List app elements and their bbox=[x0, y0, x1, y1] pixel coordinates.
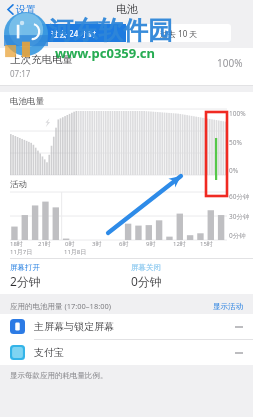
button[interactable]: 支付宝 bbox=[0, 340, 253, 365]
staticText: 50% bbox=[229, 138, 242, 147]
staticText: 过去 10 天 bbox=[160, 28, 198, 39]
button[interactable]: 过去 24 小时 bbox=[22, 24, 126, 42]
staticText: 2分钟 bbox=[10, 273, 41, 289]
staticText: 上次充电电量 bbox=[10, 53, 73, 66]
staticText: www.pc0359.cn bbox=[55, 44, 155, 62]
staticText: 21时 bbox=[38, 240, 51, 248]
staticText: 18时 bbox=[10, 240, 23, 248]
button[interactable]: 主屏幕与锁定屏幕 bbox=[0, 314, 253, 339]
staticText: 3时 bbox=[92, 240, 102, 248]
staticText: 11月8日 bbox=[64, 248, 87, 256]
staticText: 设置 bbox=[16, 3, 36, 16]
staticText: 主屏幕与锁定屏幕 bbox=[34, 320, 235, 333]
staticText: 0分钟 bbox=[131, 273, 162, 289]
staticText: 显示每款应用的耗电量比例。 bbox=[10, 371, 108, 380]
staticText: 屏幕打开 bbox=[10, 263, 40, 272]
staticText: 应用的电池用量 (17:00–18:00) bbox=[10, 301, 213, 311]
staticText: 9时 bbox=[146, 240, 156, 248]
staticText: 100% bbox=[229, 109, 246, 118]
staticText: 活动 bbox=[10, 179, 27, 190]
staticText: 电池电量 bbox=[10, 96, 44, 107]
staticText: 07:17 bbox=[10, 68, 31, 79]
staticText: 6时 bbox=[119, 240, 129, 248]
staticText: 100% bbox=[217, 56, 243, 70]
staticText: 11月7日 bbox=[10, 248, 33, 256]
staticText: 60分钟 bbox=[229, 192, 250, 201]
staticText: 0分钟 bbox=[229, 231, 246, 240]
staticText: 显示活动 bbox=[213, 302, 243, 311]
staticText: 屏幕关闭 bbox=[131, 263, 161, 272]
staticText: 河东软件园 bbox=[48, 15, 173, 46]
staticText: 0时 bbox=[65, 240, 75, 248]
staticText: 电池 bbox=[116, 2, 138, 16]
button[interactable]: 过去 10 天 bbox=[126, 24, 231, 42]
staticText: 15时 bbox=[200, 240, 213, 248]
staticText: 0% bbox=[229, 166, 239, 175]
staticText: 过去 24 小时 bbox=[51, 28, 97, 39]
button[interactable]: 显示活动 bbox=[213, 302, 243, 311]
staticText: 支付宝 bbox=[34, 346, 235, 359]
staticText: 30分钟 bbox=[229, 212, 250, 221]
button[interactable]: 设置 bbox=[5, 1, 38, 18]
staticText: 12时 bbox=[173, 240, 186, 248]
